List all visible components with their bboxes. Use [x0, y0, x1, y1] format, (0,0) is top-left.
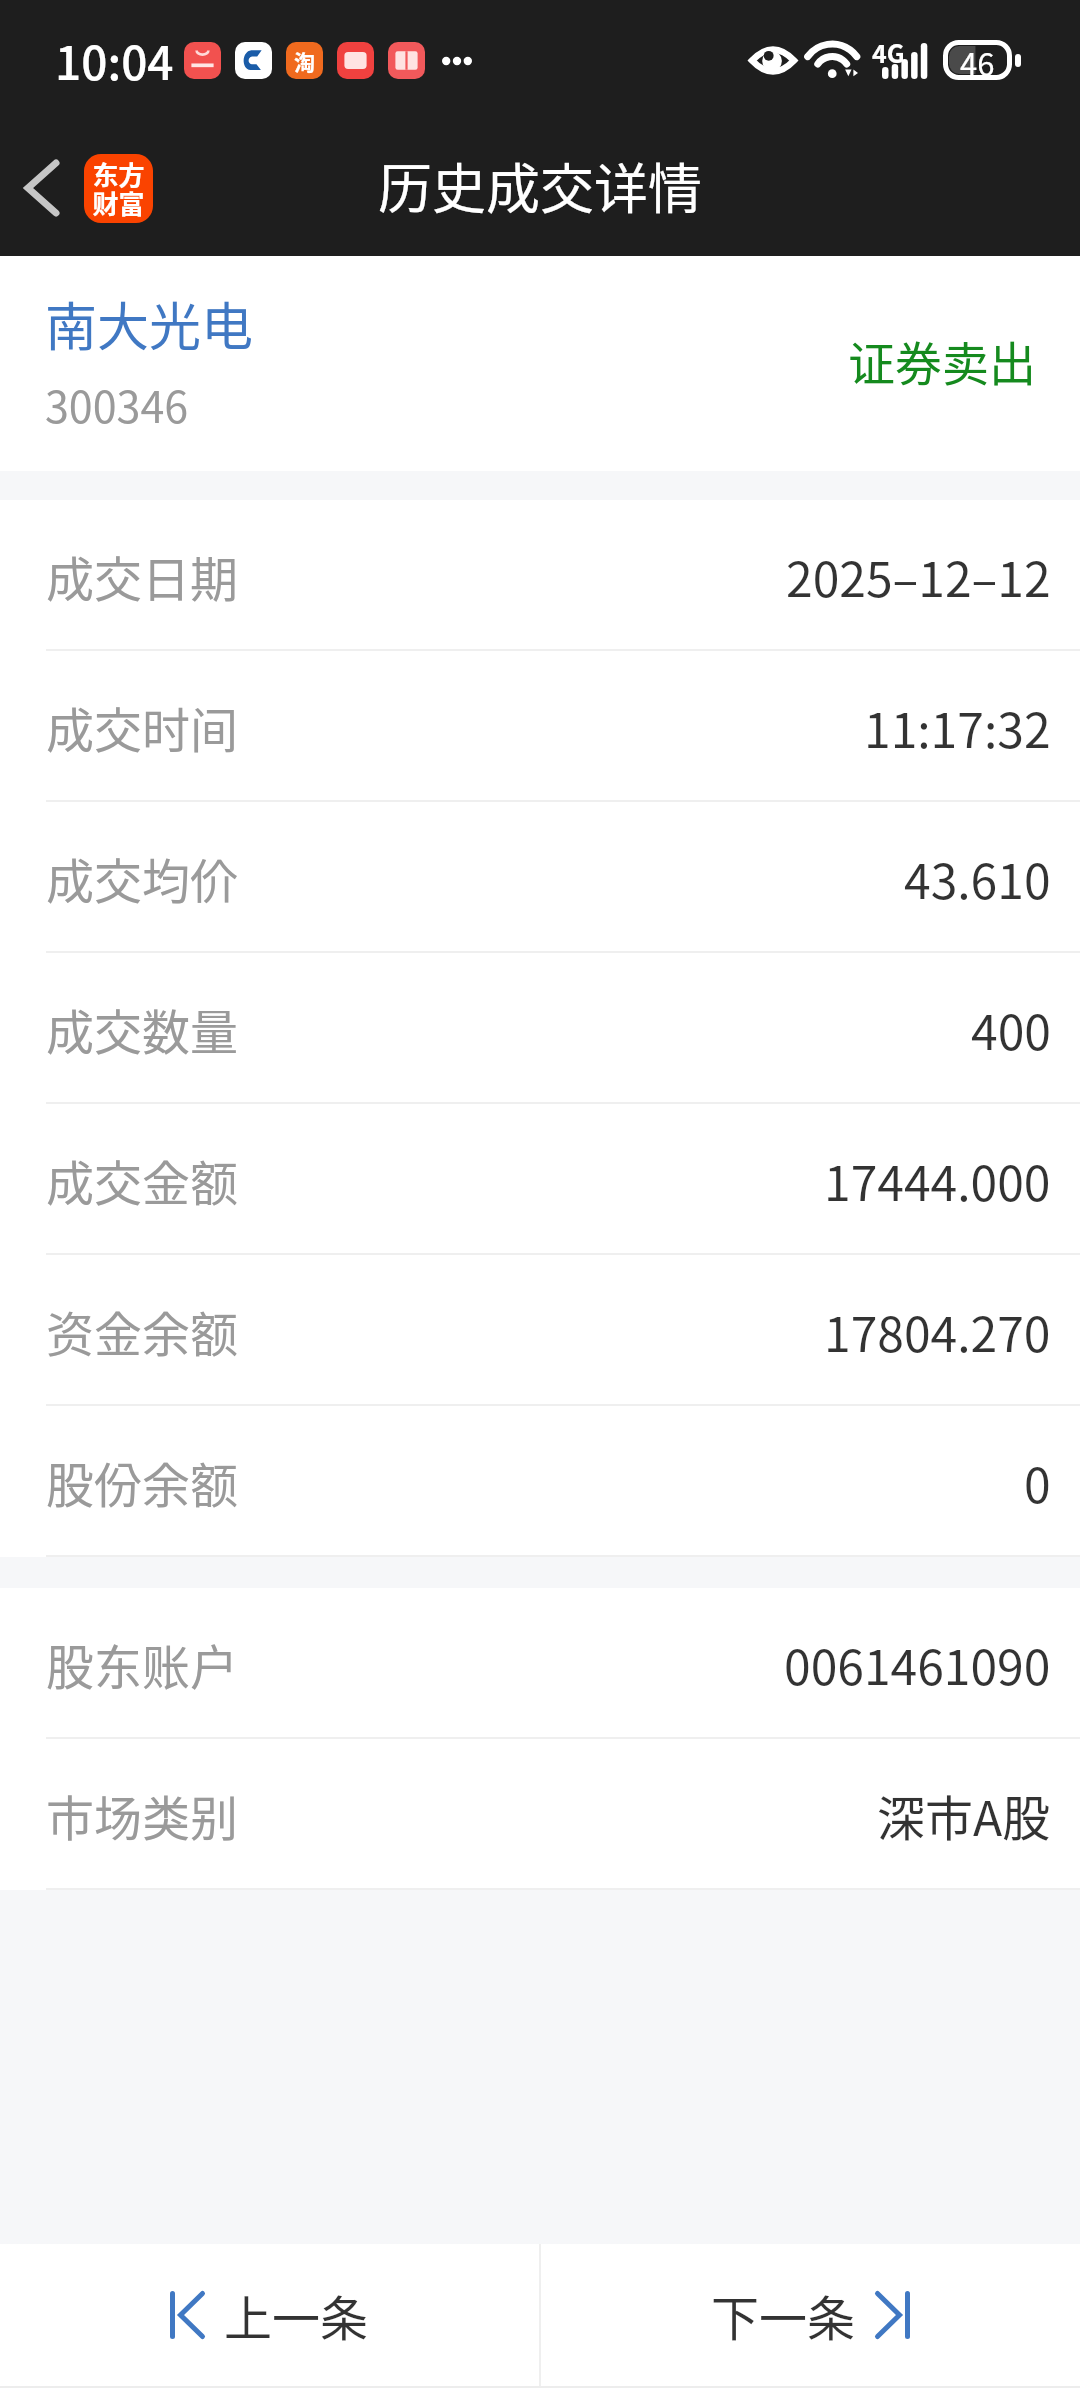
staticText: 10:04: [55, 27, 174, 94]
staticText: 股份余额: [46, 1447, 239, 1517]
staticText: 2025–12–12: [786, 541, 1051, 611]
staticText: 股东账户: [46, 1629, 239, 1699]
button[interactable]: 成交时间: [0, 651, 1080, 802]
staticText: 证券卖出: [848, 326, 1036, 394]
staticText: 下一条: [711, 2280, 856, 2350]
staticText: 46: [960, 40, 995, 80]
staticText: 11:17:32: [864, 692, 1051, 762]
button[interactable]: 东方财富: [84, 154, 153, 223]
button[interactable]: 股份余额: [0, 1406, 1080, 1557]
staticText: 0061461090: [784, 1629, 1051, 1699]
button[interactable]: 成交日期: [0, 500, 1080, 651]
staticText: 43.610: [904, 843, 1051, 913]
staticText: 17804.270: [824, 1296, 1051, 1366]
staticText: 深市A股: [877, 1780, 1051, 1850]
button[interactable]: Back: [0, 120, 84, 256]
staticText: 市场类别: [46, 1780, 239, 1850]
staticText: 成交日期: [46, 541, 239, 611]
staticText: 0: [1024, 1447, 1051, 1517]
button[interactable]: 下一条: [541, 2244, 1080, 2386]
staticText: 东方 财富: [92, 155, 145, 222]
button[interactable]: 资金余额: [0, 1255, 1080, 1406]
staticText: 300346: [45, 373, 189, 435]
staticText: 成交金额: [46, 1145, 239, 1215]
staticText: 成交时间: [46, 692, 239, 762]
button[interactable]: 成交数量: [0, 953, 1080, 1104]
staticText: 淘: [294, 46, 315, 76]
staticText: 400: [971, 994, 1051, 1064]
staticText: 成交数量: [46, 994, 239, 1064]
button[interactable]: 成交金额: [0, 1104, 1080, 1255]
button[interactable]: 股东账户: [0, 1588, 1080, 1739]
staticText: 17444.000: [824, 1145, 1051, 1215]
button[interactable]: 成交均价: [0, 802, 1080, 953]
button[interactable]: 市场类别: [0, 1739, 1080, 1890]
staticText: 4G: [872, 34, 905, 70]
staticText: 历史成交详情: [378, 146, 702, 224]
staticText: 南大光电: [45, 286, 254, 361]
button[interactable]: 上一条: [0, 2244, 539, 2386]
staticText: 成交均价: [46, 843, 239, 913]
staticText: 资金余额: [46, 1296, 239, 1366]
staticText: 上一条: [224, 2280, 369, 2350]
